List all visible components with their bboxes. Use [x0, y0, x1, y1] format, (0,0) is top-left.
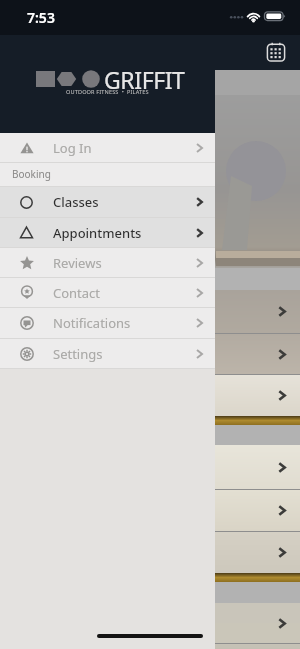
button[interactable]: Classes [0, 187, 215, 217]
staticText: GRIFFIT [104, 64, 185, 95]
staticText: Appointments [53, 224, 142, 242]
button[interactable]: Reviews [0, 248, 215, 277]
button[interactable] [0, 490, 300, 531]
staticText: Settings [53, 345, 103, 363]
button[interactable]: Appointments [0, 218, 215, 247]
button[interactable] [0, 445, 300, 489]
staticText: Reviews [53, 254, 102, 272]
button[interactable] [0, 644, 300, 649]
button[interactable]: Log In [0, 133, 215, 162]
staticText: 7:53 [27, 8, 55, 27]
staticText: Log In [53, 139, 92, 157]
button[interactable] [0, 603, 300, 643]
staticText: Classes [53, 193, 99, 211]
staticText: OUTDOOR FITNESS • PILATES [66, 88, 149, 96]
staticText: Contact [53, 284, 101, 302]
button[interactable] [0, 334, 300, 374]
button[interactable]: Notifications [0, 308, 215, 338]
button[interactable]: Settings [0, 339, 215, 368]
staticText: Notifications [53, 314, 131, 332]
button[interactable] [0, 375, 300, 416]
button[interactable]: Calendar [263, 39, 289, 65]
staticText: Booking [12, 167, 51, 181]
button[interactable]: Contact [0, 278, 215, 307]
button[interactable] [0, 532, 300, 573]
button[interactable] [0, 290, 300, 333]
